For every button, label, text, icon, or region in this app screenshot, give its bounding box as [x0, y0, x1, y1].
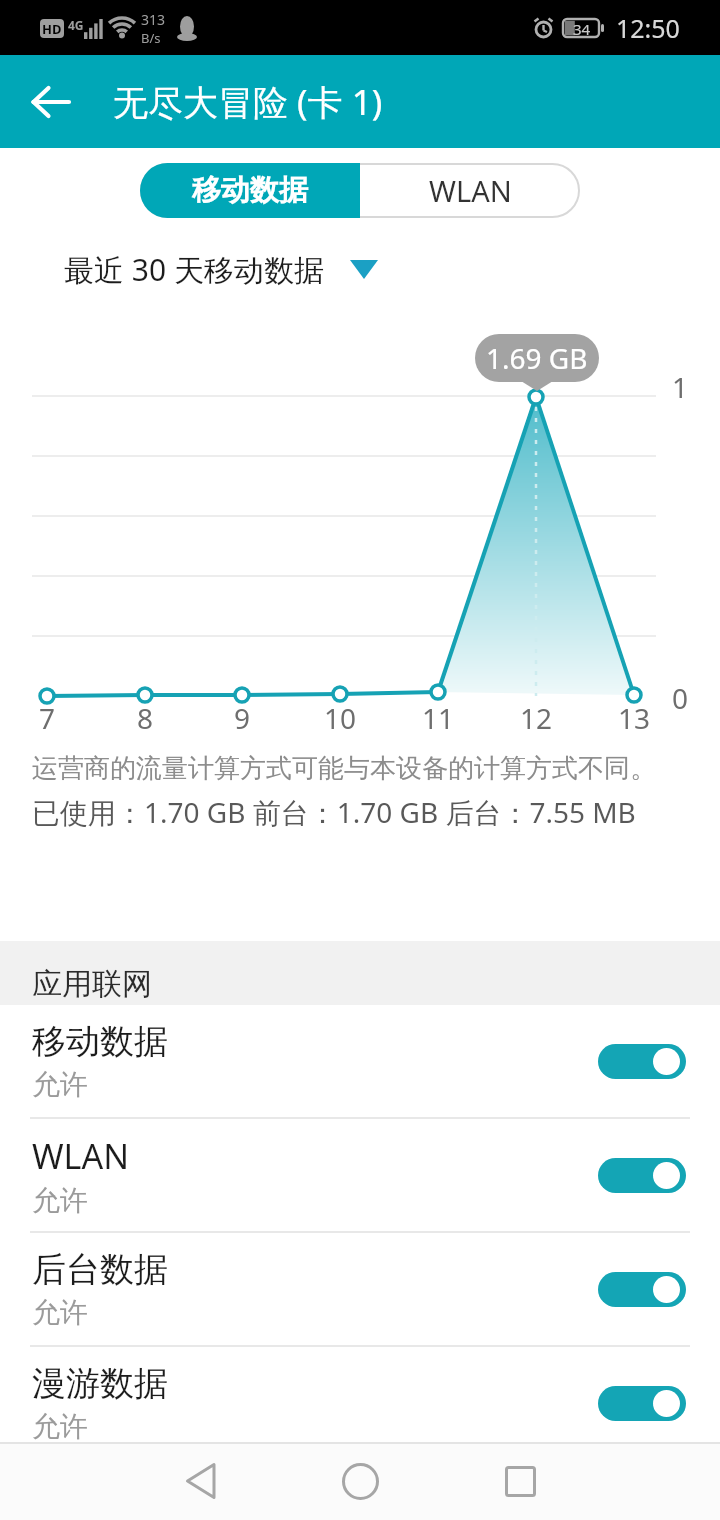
button[interactable]	[598, 1386, 686, 1421]
staticText: 后台数据	[32, 1248, 168, 1291]
staticText: 最近 30 天移动数据	[64, 249, 324, 290]
button[interactable]: WLAN	[0, 1119, 720, 1233]
button[interactable]: 移动数据	[140, 163, 360, 218]
staticText: 12:50	[616, 11, 680, 45]
staticText: WLAN	[32, 1133, 130, 1179]
staticText: 8	[137, 699, 154, 737]
staticText: 移动数据	[192, 172, 308, 209]
staticText: WLAN	[429, 171, 512, 210]
staticText: 无尽大冒险 (卡 1)	[113, 78, 383, 126]
button[interactable]: 漫游数据	[0, 1347, 720, 1461]
staticText: 0	[672, 679, 689, 717]
staticText: B/s	[141, 29, 161, 47]
staticText: 漫游数据	[32, 1362, 168, 1405]
button[interactable]: 移动数据	[0, 1005, 720, 1119]
staticText: 允许	[32, 1295, 88, 1330]
staticText: 12	[520, 699, 553, 737]
staticText: 13	[618, 699, 651, 737]
staticText: 313	[141, 10, 166, 29]
staticText: 允许	[32, 1183, 88, 1218]
button[interactable]	[598, 1158, 686, 1193]
button[interactable]	[160, 1442, 240, 1520]
button[interactable]: 最近 30 天移动数据	[64, 249, 378, 290]
staticText: 7	[39, 699, 56, 737]
staticText: 11	[422, 699, 455, 737]
staticText: HD	[42, 20, 62, 38]
staticText: 1.69 GB	[486, 339, 588, 377]
button[interactable]	[0, 55, 95, 148]
button[interactable]	[598, 1272, 686, 1307]
staticText: 34	[573, 19, 591, 37]
staticText: 1	[672, 368, 689, 406]
staticText: 已使用：1.70 GB 前台：1.70 GB 后台：7.55 MB	[32, 793, 636, 831]
staticText: 应用联网	[32, 965, 152, 1003]
staticText: 运营商的流量计算方式可能与本设备的计算方式不同。	[32, 752, 656, 785]
staticText: 10	[324, 699, 357, 737]
button[interactable]	[598, 1044, 686, 1079]
button[interactable]: 后台数据	[0, 1233, 720, 1347]
staticText: 允许	[32, 1067, 88, 1102]
button[interactable]	[480, 1442, 560, 1520]
staticText: 移动数据	[32, 1020, 168, 1063]
button[interactable]: WLAN	[360, 163, 580, 218]
staticText: 4G	[68, 17, 84, 33]
staticText: 9	[234, 699, 251, 737]
button[interactable]	[320, 1442, 400, 1520]
staticText: 允许	[32, 1409, 88, 1444]
